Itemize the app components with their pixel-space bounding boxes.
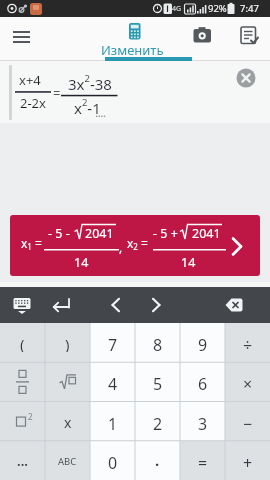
button[interactable] <box>0 323 45 362</box>
staticText: = <box>198 452 208 470</box>
staticText: x+4 <box>19 71 41 87</box>
staticText: ) <box>65 334 70 352</box>
button[interactable] <box>45 441 90 480</box>
staticText: - 5 + <box>153 225 178 241</box>
button[interactable] <box>46 289 78 321</box>
button[interactable] <box>135 441 180 480</box>
staticText: 4G <box>172 4 182 14</box>
staticText: 92% <box>208 2 227 15</box>
button[interactable] <box>0 402 45 441</box>
button[interactable] <box>135 402 180 441</box>
staticText: x2-1 <box>74 96 101 116</box>
button[interactable] <box>225 402 270 441</box>
staticText: 2041 <box>192 225 221 241</box>
staticText: 5 <box>153 373 163 391</box>
staticText: x1 = <box>21 235 42 252</box>
button[interactable] <box>225 441 270 480</box>
staticText: 1 <box>108 413 118 431</box>
button[interactable] <box>225 362 270 401</box>
button[interactable] <box>0 441 45 480</box>
staticText: ABC <box>58 455 77 468</box>
staticText: 6 <box>198 373 208 391</box>
staticText: 9 <box>198 334 208 352</box>
button[interactable] <box>100 289 132 321</box>
staticText: 14 <box>74 254 89 270</box>
button[interactable]: Изменить <box>102 17 194 61</box>
button[interactable] <box>180 441 225 480</box>
staticText: 2 <box>28 411 33 422</box>
staticText: 0 <box>108 452 118 470</box>
button[interactable] <box>180 402 225 441</box>
staticText: × <box>243 373 253 391</box>
staticText: , <box>119 239 123 255</box>
button[interactable] <box>189 21 217 49</box>
staticText: 2-2x <box>20 94 46 110</box>
staticText: 2041 <box>85 225 114 241</box>
button[interactable] <box>90 323 135 362</box>
button[interactable] <box>90 362 135 401</box>
button[interactable] <box>135 323 180 362</box>
button[interactable] <box>90 441 135 480</box>
button[interactable] <box>180 362 225 401</box>
button[interactable] <box>140 289 172 321</box>
button[interactable] <box>45 402 90 441</box>
button[interactable] <box>45 323 90 362</box>
staticText: 2 <box>153 413 163 431</box>
staticText: - 5 - <box>48 225 70 241</box>
staticText: − <box>243 413 253 431</box>
button[interactable] <box>135 362 180 401</box>
staticText: 8 <box>153 334 163 352</box>
button[interactable] <box>0 362 45 401</box>
button[interactable] <box>45 362 90 401</box>
staticText: ( <box>20 334 25 352</box>
button[interactable] <box>180 323 225 362</box>
staticText: 3x2-38 <box>68 72 112 92</box>
staticText: x2 = <box>127 235 148 252</box>
staticText: 3 <box>198 413 208 431</box>
staticText: Изменить <box>101 41 164 55</box>
staticText: = <box>53 84 61 100</box>
button[interactable]: x1 = <box>10 215 260 276</box>
staticText: + <box>243 452 253 470</box>
button[interactable] <box>218 289 250 321</box>
button[interactable] <box>90 402 135 441</box>
staticText: . <box>155 450 160 468</box>
button[interactable] <box>236 68 256 88</box>
button[interactable] <box>8 23 36 51</box>
staticText: 7 <box>108 334 118 352</box>
staticText: 4 <box>108 373 118 391</box>
staticText: 14 <box>181 254 196 270</box>
staticText: ... <box>17 452 28 470</box>
staticText: ÷ <box>243 334 253 352</box>
button[interactable] <box>235 21 263 49</box>
staticText: 7:47 <box>240 2 259 15</box>
staticText: x <box>64 413 72 431</box>
button[interactable] <box>225 323 270 362</box>
button[interactable] <box>6 289 38 321</box>
